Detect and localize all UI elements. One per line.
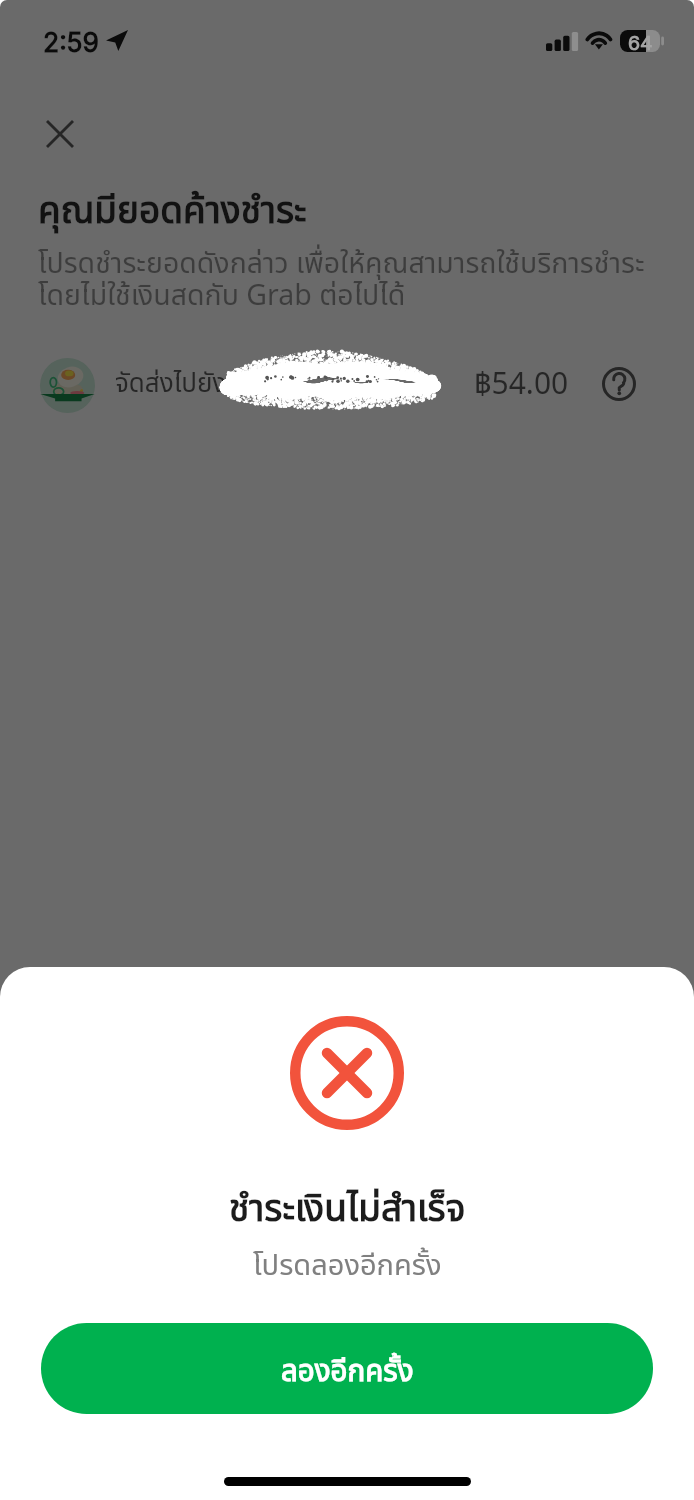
staticText: คุณมียอดค้างชำระ bbox=[38, 184, 307, 240]
staticText: โปรดลองอีกครั้ง bbox=[253, 1244, 442, 1288]
button[interactable]: จัดส่งไปยัง bbox=[0, 352, 694, 418]
staticText: ฿54.00 bbox=[474, 362, 569, 407]
staticText: โปรดชำระยอดดังกล่าว เพื่อให้คุณสามารถใช้… bbox=[38, 243, 645, 318]
staticText: จัดส่งไปยัง bbox=[115, 364, 227, 403]
button[interactable]: Help bbox=[595, 360, 642, 407]
staticText: ลองอีกครั้ง bbox=[281, 1350, 414, 1395]
button[interactable]: Close bbox=[36, 110, 84, 158]
staticText: ชำระเงินไม่สำเร็จ bbox=[229, 1182, 466, 1238]
staticText: 2:59 bbox=[43, 26, 99, 58]
button[interactable]: ลองอีกครั้ง bbox=[41, 1323, 653, 1414]
staticText: 64 bbox=[628, 31, 653, 53]
